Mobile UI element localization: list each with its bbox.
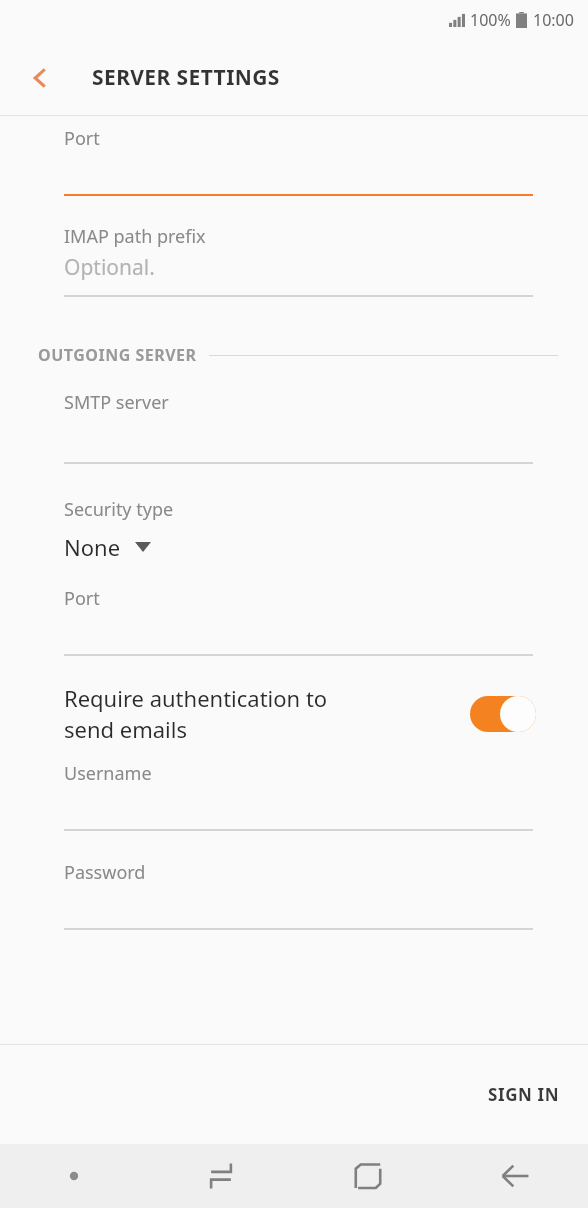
staticText: 10:00: [533, 9, 574, 31]
staticText: Security type: [64, 497, 174, 522]
button[interactable]: Back: [16, 54, 64, 102]
staticText: Username: [64, 761, 152, 786]
staticText: SERVER SETTINGS: [92, 63, 280, 92]
button[interactable]: Back: [441, 1144, 588, 1208]
button[interactable]: SIGN IN: [460, 1065, 588, 1124]
button[interactable]: Require authentication toggle: [470, 695, 536, 733]
staticText: Require authentication to send emails: [64, 683, 470, 745]
staticText: IMAP path prefix: [64, 224, 206, 249]
button[interactable]: Recents: [147, 1144, 294, 1208]
staticText: Password: [64, 860, 146, 885]
staticText: Optional.: [64, 253, 155, 282]
staticText: Port: [64, 586, 100, 611]
staticText: None: [64, 532, 121, 562]
staticText: SIGN IN: [488, 1083, 560, 1106]
staticText: 100%: [470, 9, 511, 31]
staticText: OUTGOING SERVER: [38, 344, 197, 366]
button[interactable]: Require authentication to send emails: [0, 677, 588, 751]
button[interactable]: Home: [294, 1144, 441, 1208]
staticText: Port: [64, 126, 100, 151]
button[interactable]: None: [0, 530, 588, 564]
staticText: SMTP server: [64, 390, 169, 415]
